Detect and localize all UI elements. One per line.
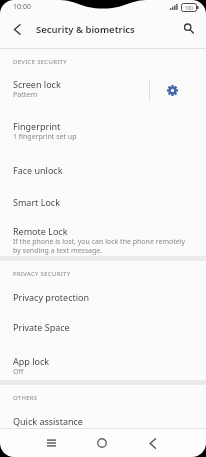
- button[interactable]: Fingerprint: [0, 111, 206, 151]
- staticText: Face unlock: [13, 164, 63, 176]
- button[interactable]: Quick assistance: [13, 414, 206, 428]
- staticText: Quick assistance: [13, 415, 83, 427]
- staticText: Pattern: [13, 90, 38, 100]
- staticText: Off: [13, 367, 24, 377]
- button[interactable]: App lock: [0, 342, 206, 380]
- staticText: Security & biometrics: [36, 23, 135, 36]
- staticText: Privacy protection: [13, 291, 90, 303]
- staticText: OTHERS: [13, 394, 38, 402]
- staticText: Private Space: [13, 321, 70, 333]
- staticText: Fingerprint: [13, 120, 61, 132]
- button[interactable]: [150, 70, 194, 111]
- button[interactable]: [81, 429, 123, 457]
- button[interactable]: [30, 429, 72, 457]
- staticText: 1 fingerprint set up: [13, 132, 77, 142]
- button[interactable]: Private Space: [0, 312, 206, 342]
- button[interactable]: Face unlock: [0, 151, 206, 188]
- staticText: Smart Lock: [13, 196, 60, 208]
- staticText: 100: [185, 5, 193, 11]
- button[interactable]: Remote Lock: [0, 216, 206, 256]
- staticText: 10:00: [13, 2, 31, 12]
- button[interactable]: Privacy protection: [0, 282, 206, 312]
- staticText: Screen lock: [13, 78, 61, 90]
- button[interactable]: Screen lock: [0, 70, 206, 111]
- button[interactable]: [0, 14, 34, 44]
- staticText: DEVICE SECURITY: [13, 58, 67, 66]
- staticText: App lock: [13, 355, 50, 367]
- staticText: PRIVACY SECURITY: [13, 270, 71, 278]
- staticText: If the phone is lost, you can lock the p…: [13, 237, 186, 255]
- staticText: Remote Lock: [13, 225, 68, 237]
- button[interactable]: [132, 429, 174, 457]
- button[interactable]: [172, 14, 206, 44]
- button[interactable]: Smart Lock: [0, 188, 206, 216]
